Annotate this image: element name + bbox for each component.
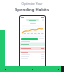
button[interactable]: Stats (27, 64, 33, 68)
staticText: Optimize Your (4, 2, 60, 6)
button[interactable] (21, 51, 44, 53)
button[interactable] (21, 55, 44, 57)
button[interactable] (21, 57, 44, 59)
button[interactable]: Home (20, 64, 27, 68)
button[interactable]: Cards (33, 64, 39, 68)
button[interactable]: More (39, 64, 45, 68)
button[interactable] (21, 43, 44, 46)
button[interactable] (21, 37, 44, 40)
button[interactable] (21, 53, 44, 55)
button[interactable] (26, 19, 39, 21)
button[interactable] (21, 47, 44, 50)
staticText: Spending Habits (4, 7, 60, 13)
